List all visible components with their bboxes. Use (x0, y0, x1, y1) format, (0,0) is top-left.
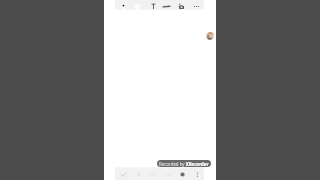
button[interactable]: Text tool (147, 0, 159, 12)
button[interactable]: Profile picture (206, 32, 214, 40)
button[interactable]: Done (117, 168, 129, 180)
button[interactable]: Eraser (132, 168, 144, 180)
button[interactable]: Settings (191, 168, 203, 180)
button[interactable]: Shape tool (131, 0, 143, 12)
button[interactable]: Drawing tools (115, 0, 204, 10)
button[interactable]: Recorded by XRecorder (157, 160, 211, 167)
button[interactable]: More options (190, 0, 202, 12)
button[interactable]: Marker tool (160, 0, 172, 12)
staticText: Recorded by XRecorder (159, 161, 209, 167)
button[interactable]: Brush colour (176, 168, 188, 180)
button[interactable]: Editing actions (115, 167, 204, 180)
button[interactable]: Add photo (175, 0, 187, 12)
button[interactable]: Brush tool (117, 0, 129, 12)
